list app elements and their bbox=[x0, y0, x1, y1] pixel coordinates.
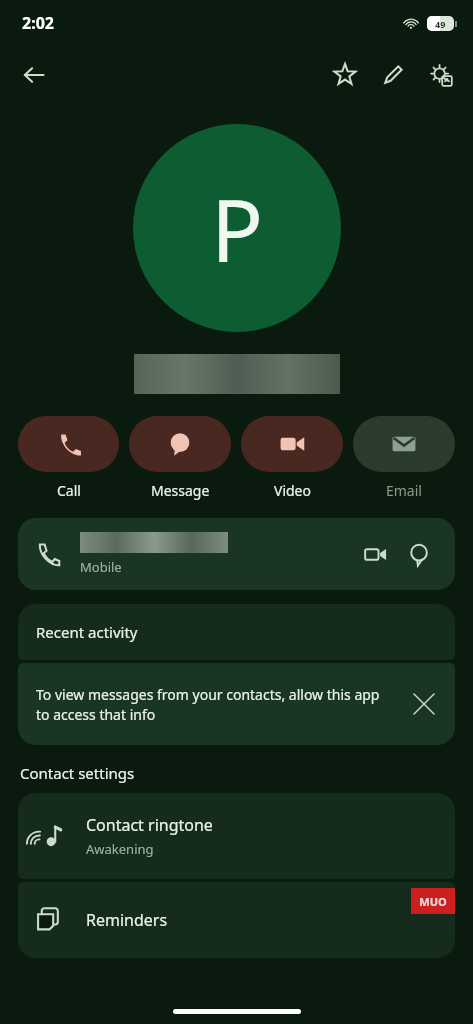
staticText: Message bbox=[151, 481, 210, 500]
button[interactable]: Dismiss bbox=[403, 683, 445, 725]
button[interactable]: Contact photo bbox=[133, 124, 341, 332]
button[interactable]: Edit bbox=[369, 51, 417, 99]
button[interactable]: Call bbox=[18, 416, 119, 500]
button[interactable]: Message bbox=[129, 416, 231, 500]
staticText: Contact settings bbox=[20, 763, 135, 783]
button[interactable]: Video bbox=[241, 416, 343, 500]
staticText: Recent activity bbox=[36, 622, 138, 642]
button[interactable]: Mobile bbox=[18, 518, 455, 590]
button[interactable]: To view messages from your contacts, all… bbox=[18, 663, 455, 745]
staticText: 2:02 bbox=[22, 12, 54, 34]
button[interactable]: Video call bbox=[353, 532, 397, 576]
button[interactable]: Contact ringtone bbox=[18, 793, 455, 879]
staticText: Contact ringtone bbox=[86, 814, 213, 836]
staticText: Video bbox=[274, 481, 311, 500]
staticText: P bbox=[211, 170, 264, 287]
staticText: Email bbox=[386, 481, 422, 500]
button[interactable]: Recent activity bbox=[18, 604, 455, 660]
staticText: To view messages from your contacts, all… bbox=[36, 685, 389, 724]
button[interactable]: Email bbox=[353, 416, 455, 500]
button[interactable]: Settings bbox=[417, 51, 465, 99]
button[interactable]: Reminders bbox=[18, 882, 455, 958]
staticText: Call bbox=[57, 481, 81, 500]
staticText: MUO bbox=[419, 894, 447, 909]
staticText: Awakening bbox=[86, 840, 154, 858]
button[interactable]: Message bbox=[397, 532, 441, 576]
staticText: 49 bbox=[435, 18, 446, 30]
staticText: Reminders bbox=[86, 909, 168, 931]
staticText: Mobile bbox=[80, 558, 122, 576]
button[interactable]: Favorite bbox=[321, 51, 369, 99]
button[interactable]: Back bbox=[10, 51, 58, 99]
